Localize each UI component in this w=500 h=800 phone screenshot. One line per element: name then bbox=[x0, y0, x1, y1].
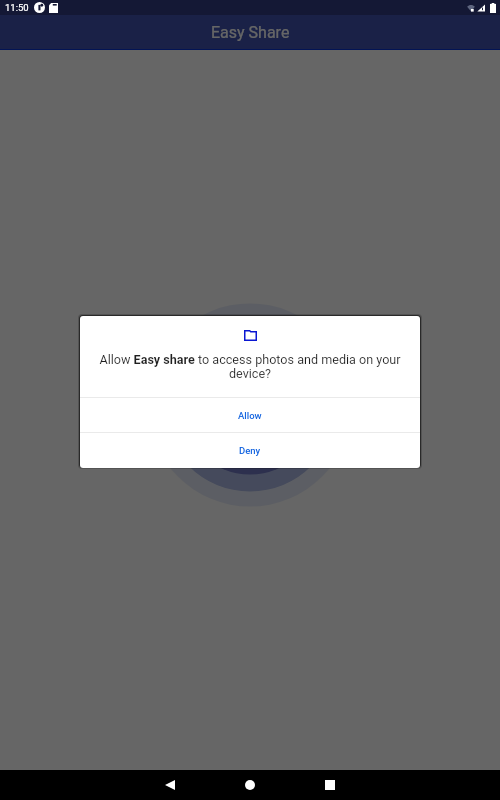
staticText: Allow bbox=[238, 410, 262, 421]
button[interactable]: Home bbox=[210, 770, 290, 800]
button[interactable]: Deny bbox=[80, 433, 420, 468]
staticText: 11:50 bbox=[5, 2, 29, 13]
staticText: Easy Share bbox=[211, 23, 290, 42]
staticText: Deny bbox=[239, 445, 261, 456]
button[interactable]: Back bbox=[130, 770, 210, 800]
staticText: Allow Easy share to access photos and me… bbox=[94, 352, 406, 381]
button[interactable]: Allow bbox=[80, 398, 420, 432]
button[interactable]: Recent apps bbox=[290, 770, 370, 800]
